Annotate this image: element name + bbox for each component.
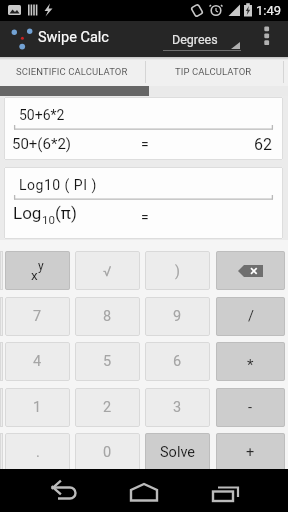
staticText: 1:49	[256, 3, 282, 18]
button[interactable]: √	[75, 251, 140, 290]
staticText: 8	[103, 308, 112, 325]
button[interactable]	[112, 469, 176, 512]
staticText: Swipe Calc	[38, 29, 109, 46]
button[interactable]: TIP CALCULATOR	[144, 57, 283, 86]
button[interactable]: 2	[75, 388, 140, 427]
button[interactable]: x	[5, 251, 70, 290]
button[interactable]: 6	[145, 342, 210, 381]
staticText: 2	[103, 399, 112, 416]
staticText: 3	[173, 399, 182, 416]
staticText: x	[31, 267, 38, 283]
staticText: Log	[13, 203, 42, 223]
staticText: 1	[33, 399, 42, 416]
button[interactable]: Solve	[145, 433, 210, 472]
button[interactable]: 4	[5, 342, 70, 381]
staticText: =	[141, 136, 149, 152]
staticText: -	[248, 399, 253, 416]
button[interactable]: 7	[5, 297, 70, 336]
button[interactable]: Log10 ( PI )	[4, 167, 283, 239]
button[interactable]: Degrees	[160, 23, 248, 55]
button[interactable]	[252, 21, 282, 57]
staticText: )	[175, 263, 180, 279]
button[interactable]: 0	[75, 433, 140, 472]
button[interactable]: 9	[145, 297, 210, 336]
staticText: 10	[42, 213, 55, 226]
button[interactable]: /	[216, 297, 285, 336]
staticText: 50+(6*2)	[12, 135, 72, 153]
staticText: Solve	[160, 444, 196, 461]
button[interactable]: *	[216, 342, 285, 381]
button[interactable]: SCIENTIFIC CALCULATOR	[0, 57, 144, 86]
staticText: *	[247, 356, 254, 374]
staticText: 4	[33, 353, 42, 370]
staticText: Log10 ( PI )	[19, 177, 97, 193]
staticText: .	[36, 444, 40, 461]
staticText: (π)	[55, 203, 77, 223]
staticText: 0	[103, 444, 112, 461]
button[interactable]: 1	[5, 388, 70, 427]
button[interactable]: 8	[75, 297, 140, 336]
staticText: 9	[173, 308, 182, 325]
staticText: √	[103, 263, 112, 279]
staticText: Degrees	[172, 32, 218, 47]
button[interactable]: 5	[75, 342, 140, 381]
staticText: 62	[254, 135, 272, 154]
staticText: 6	[173, 353, 182, 370]
staticText: TIP CALCULATOR	[175, 66, 252, 77]
button[interactable]	[32, 469, 96, 512]
staticText: 5	[103, 353, 112, 370]
button[interactable]: )	[145, 251, 210, 290]
staticText: +	[246, 444, 255, 461]
button[interactable]	[192, 469, 256, 512]
button[interactable]: +	[216, 433, 285, 472]
button[interactable]	[216, 251, 285, 290]
staticText: SCIENTIFIC CALCULATOR	[16, 66, 128, 77]
staticText: 7	[33, 308, 42, 325]
staticText: =	[141, 209, 149, 225]
button[interactable]: 50+6*2	[4, 97, 283, 160]
button[interactable]: -	[216, 388, 285, 427]
button[interactable]: .	[5, 433, 70, 472]
staticText: 50+6*2	[19, 107, 65, 123]
staticText: /	[248, 308, 254, 325]
staticText: y	[38, 259, 44, 273]
button[interactable]: 3	[145, 388, 210, 427]
